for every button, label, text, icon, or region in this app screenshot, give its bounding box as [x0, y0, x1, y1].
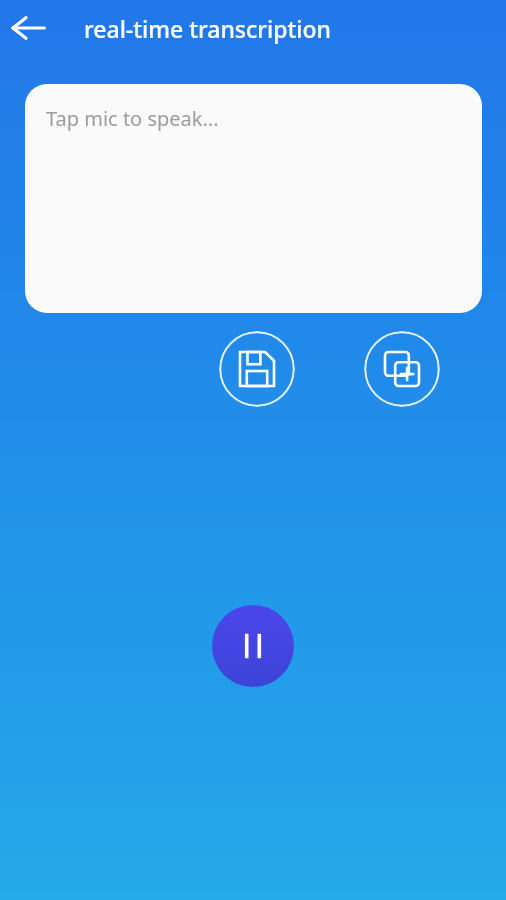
- button[interactable]: Save transcript: [219, 331, 295, 407]
- button[interactable]: Pause recording: [212, 605, 294, 687]
- staticText: Tap mic to speak...: [46, 105, 219, 132]
- button[interactable]: New transcript: [364, 331, 440, 407]
- staticText: real-time transcription: [84, 13, 332, 44]
- button[interactable]: Tap mic to speak...: [25, 84, 482, 313]
- button[interactable]: Back: [0, 0, 56, 56]
